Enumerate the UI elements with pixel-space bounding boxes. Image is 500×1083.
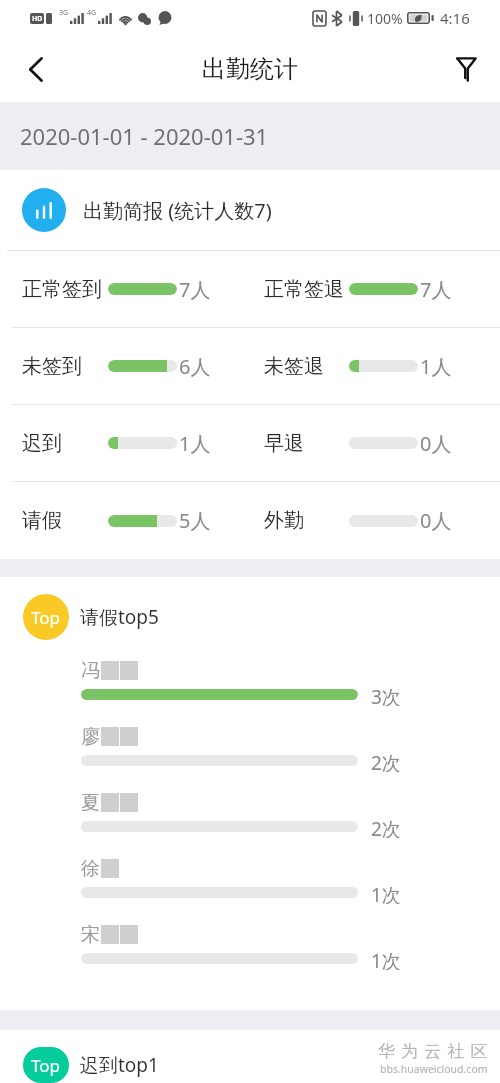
- staticText: 外勤: [264, 508, 304, 533]
- staticText: 4:16: [440, 8, 470, 28]
- staticText: 2次: [371, 750, 401, 772]
- staticText: bbs.huaweicloud.com: [380, 1062, 488, 1076]
- staticText: 100%: [367, 9, 403, 28]
- staticText: 廖: [81, 725, 100, 747]
- button[interactable]: Filter: [442, 45, 490, 93]
- staticText: 请假top5: [80, 604, 159, 630]
- staticText: 3G: [59, 8, 69, 18]
- staticText: 2020-01-01 - 2020-01-31: [20, 121, 269, 151]
- staticText: 早退: [264, 431, 304, 456]
- button[interactable]: 出勤简报 (统计人数7): [22, 170, 500, 250]
- staticText: Top: [31, 606, 61, 629]
- staticText: 出勤统计: [202, 54, 298, 84]
- staticText: 华为云社区: [378, 1041, 494, 1062]
- staticText: 未签退: [264, 354, 324, 379]
- staticText: 0人: [420, 430, 452, 457]
- staticText: HD: [32, 14, 43, 24]
- staticText: 徐: [81, 857, 100, 879]
- staticText: 2次: [371, 816, 401, 838]
- staticText: Top: [31, 1054, 61, 1077]
- staticText: 正常签到: [22, 277, 102, 302]
- button[interactable]: 2020-01-01 - 2020-01-31: [0, 102, 500, 170]
- staticText: 3次: [371, 684, 401, 706]
- staticText: 4G: [87, 8, 97, 18]
- staticText: 5人: [179, 507, 211, 534]
- staticText: 正常签退: [264, 277, 344, 302]
- staticText: 请假: [22, 508, 62, 533]
- staticText: 1人: [420, 353, 452, 380]
- staticText: 7人: [420, 276, 452, 303]
- staticText: 1人: [179, 430, 211, 457]
- staticText: 宋: [81, 923, 100, 945]
- staticText: 6人: [179, 353, 211, 380]
- staticText: 冯: [81, 659, 100, 681]
- staticText: 未签到: [22, 354, 82, 379]
- staticText: 0人: [420, 507, 452, 534]
- staticText: 迟到: [22, 431, 62, 456]
- button[interactable]: Back: [12, 45, 60, 93]
- staticText: 迟到top1: [80, 1052, 159, 1078]
- button[interactable]: Top: [23, 1047, 500, 1083]
- staticText: 1次: [371, 948, 401, 970]
- staticText: 7人: [179, 276, 211, 303]
- staticText: 1次: [371, 882, 401, 904]
- staticText: 出勤简报 (统计人数7): [83, 197, 272, 224]
- button[interactable]: Top: [23, 594, 500, 659]
- staticText: 夏: [81, 791, 100, 813]
